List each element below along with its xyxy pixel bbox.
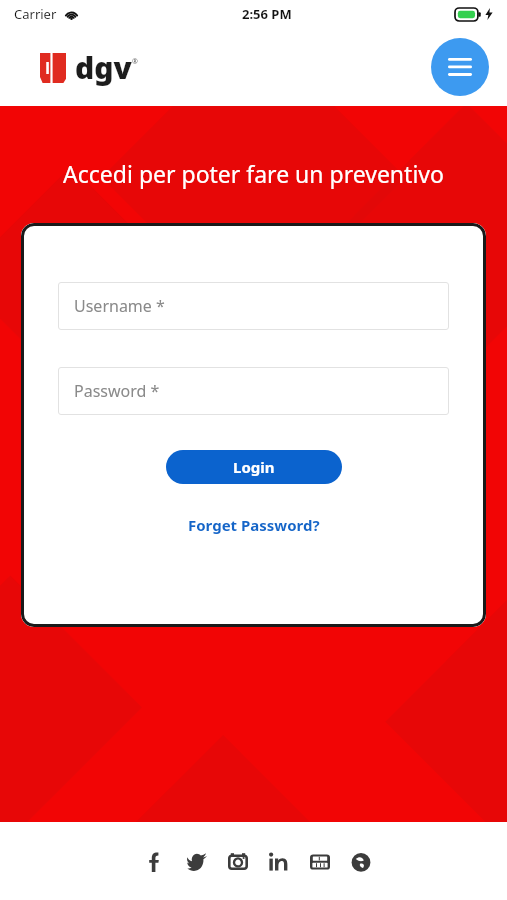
staticText: dgv — [75, 47, 132, 88]
staticText: Username * — [74, 295, 165, 317]
staticText: Forget Password? — [188, 515, 320, 535]
button[interactable]: Open menu — [431, 38, 489, 96]
button[interactable]: Password * — [58, 367, 449, 415]
button[interactable]: Login — [166, 450, 342, 484]
staticText: 2:56 PM — [242, 5, 292, 23]
button[interactable]: Website — [340, 841, 381, 882]
button[interactable]: Instagram — [217, 841, 258, 882]
staticText: Password * — [74, 380, 160, 402]
staticText: Carrier — [14, 5, 57, 23]
staticText: ® — [132, 57, 138, 67]
button[interactable]: LinkedIn — [258, 841, 299, 882]
button[interactable]: Username * — [58, 282, 449, 330]
button[interactable]: Forget Password? — [184, 511, 324, 539]
staticText: Login — [233, 457, 275, 477]
button[interactable]: YouTube — [299, 841, 340, 882]
button[interactable]: Twitter — [176, 841, 217, 882]
staticText: Accedi per poter fare un preventivo — [18, 158, 489, 189]
button[interactable]: Facebook — [135, 841, 176, 882]
